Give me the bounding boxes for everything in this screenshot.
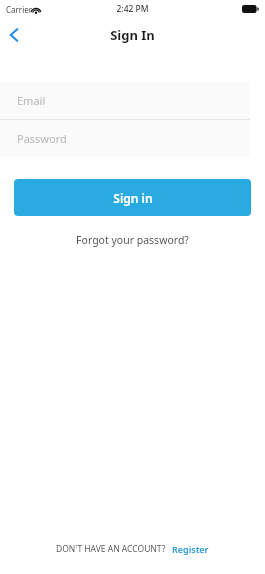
staticText: Forgot your password? [76, 233, 189, 247]
button[interactable]: Forgot your password? [70, 230, 195, 250]
staticText: Carrier [6, 4, 33, 15]
button[interactable]: Register [172, 543, 209, 555]
button[interactable]: Back [0, 20, 28, 50]
staticText: DON'T HAVE AN ACCOUNT? [56, 543, 166, 555]
button[interactable]: Email [0, 82, 250, 119]
staticText: Register [172, 543, 209, 555]
staticText: 2:42 PM [116, 3, 149, 15]
button[interactable]: Password [0, 120, 250, 157]
staticText: Sign In [110, 26, 155, 44]
button[interactable]: Sign in [14, 179, 251, 216]
staticText: Password [17, 131, 67, 146]
staticText: Sign in [113, 190, 153, 206]
staticText: Email [17, 93, 46, 108]
